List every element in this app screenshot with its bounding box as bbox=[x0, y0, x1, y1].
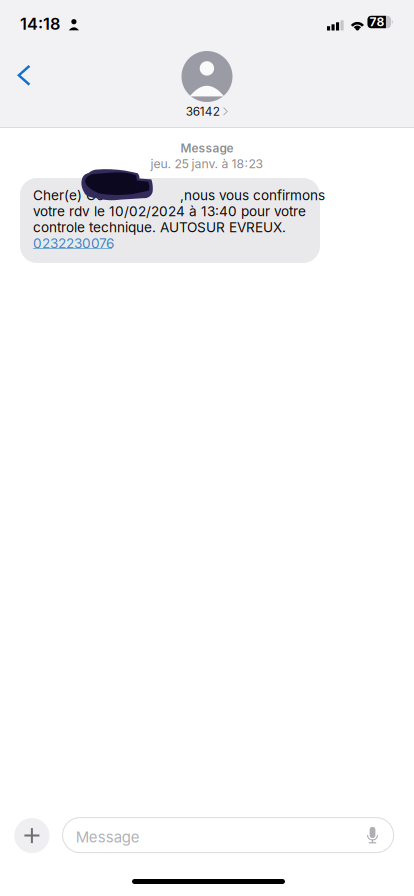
staticText: 0232230076 bbox=[33, 235, 114, 251]
staticText: votre rdv le 10/02/2024 à 13:40 pour vot… bbox=[33, 203, 306, 219]
staticText: 14:18 bbox=[20, 14, 60, 32]
button[interactable]: 36142 contact details bbox=[157, 51, 257, 117]
staticText: Cher(e) Ge ,nous vous confirmons bbox=[33, 187, 325, 203]
button[interactable]: Message field bbox=[63, 818, 394, 853]
staticText: 78 bbox=[369, 15, 384, 29]
staticText: Message bbox=[76, 828, 140, 842]
button[interactable]: Add attachment bbox=[14, 818, 49, 853]
staticText: controle technique. AUTOSUR EVREUX. bbox=[33, 219, 286, 235]
button[interactable]: Back bbox=[6, 56, 40, 94]
staticText: Message bbox=[180, 141, 233, 155]
staticText: jeu. 25 janv. à 18:23 bbox=[150, 156, 263, 171]
staticText: 36142 bbox=[186, 104, 220, 119]
